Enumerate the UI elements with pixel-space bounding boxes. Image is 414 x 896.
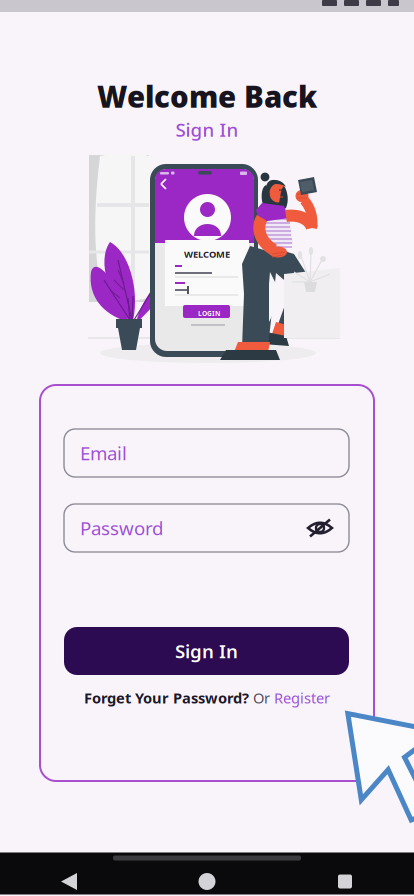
staticText: Sign In xyxy=(175,639,238,663)
button[interactable]: Register xyxy=(274,688,330,707)
staticText: Email xyxy=(80,441,127,465)
button[interactable]: Sign In xyxy=(64,627,349,675)
staticText: Password xyxy=(80,516,163,540)
button[interactable]: Password xyxy=(64,504,349,552)
staticText: Forget Your Password? xyxy=(84,688,249,707)
button[interactable]: Back xyxy=(0,868,138,894)
staticText: Register xyxy=(274,688,330,707)
staticText: Or xyxy=(249,688,274,707)
staticText: Welcome Back xyxy=(97,77,317,116)
staticText: WELCOME xyxy=(184,248,230,260)
button[interactable]: Recent apps xyxy=(276,868,414,894)
button[interactable]: Forget Your Password? xyxy=(84,688,249,707)
button[interactable]: Home xyxy=(138,868,276,894)
staticText: LOGIN xyxy=(198,309,220,318)
button[interactable]: Email xyxy=(64,429,349,477)
staticText: Sign In xyxy=(175,117,238,142)
